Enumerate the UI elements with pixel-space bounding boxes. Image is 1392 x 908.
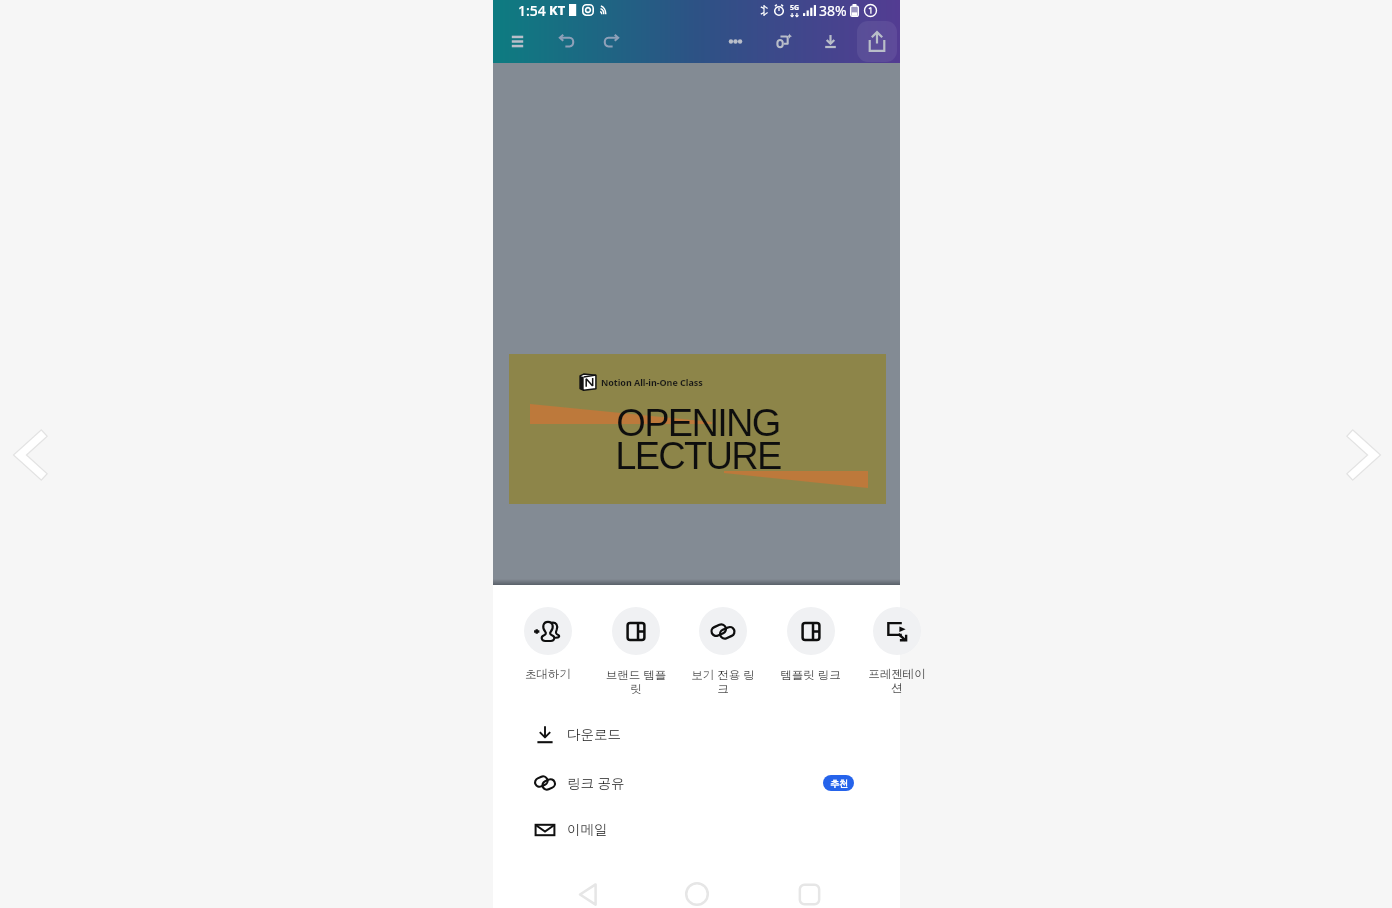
button[interactable]: 다운로드	[493, 711, 900, 758]
staticText: OPENING	[616, 402, 780, 444]
staticText: Notion All-in-One Class	[601, 376, 703, 388]
staticText: KT	[549, 1, 566, 19]
button[interactable]: Menu	[497, 21, 537, 62]
button[interactable]: Redo	[591, 21, 631, 62]
button[interactable]: 브랜드 템플릿	[603, 607, 669, 697]
staticText: 보기 전용 링크	[690, 667, 756, 697]
button[interactable]: AI tools	[763, 21, 803, 62]
staticText: 다운로드	[567, 726, 621, 743]
staticText: 초대하기	[525, 667, 571, 681]
button[interactable]: 프레젠테이션	[864, 607, 930, 696]
button[interactable]: Download	[810, 21, 850, 62]
staticText: LECTURE	[615, 435, 781, 477]
button[interactable]: Previous	[2, 420, 60, 490]
button[interactable]: Recents	[787, 873, 831, 908]
staticText: 이메일	[567, 821, 608, 838]
button[interactable]: 이메일	[493, 806, 900, 853]
button[interactable]: Back	[566, 873, 610, 908]
button[interactable]: 보기 전용 링크	[690, 607, 756, 697]
button[interactable]: More options	[715, 21, 755, 62]
button[interactable]: Share	[857, 21, 897, 62]
staticText: 링크 공유	[567, 774, 625, 792]
button[interactable]: Home	[675, 873, 719, 908]
staticText: 템플릿 링크	[780, 667, 841, 683]
staticText: 38%	[819, 1, 847, 20]
staticText: 5G	[790, 3, 800, 13]
button[interactable]: 초대하기	[515, 607, 581, 681]
button[interactable]: Next	[1334, 420, 1392, 490]
staticText: 브랜드 템플릿	[603, 667, 669, 697]
button[interactable]: 템플릿 링크	[777, 607, 843, 683]
staticText: 1:54	[518, 1, 546, 20]
button[interactable]: Undo	[546, 21, 586, 62]
staticText: 프레젠테이션	[864, 667, 930, 696]
button[interactable]: 링크 공유	[493, 759, 900, 806]
staticText: 추천	[830, 778, 848, 789]
